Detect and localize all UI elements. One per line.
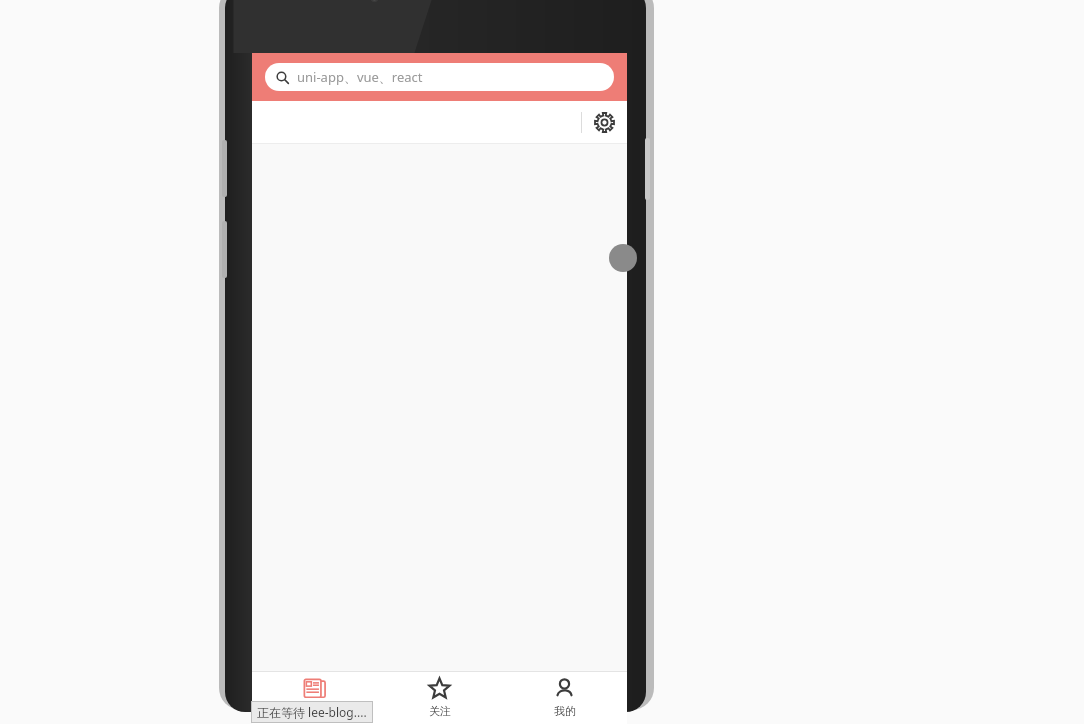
- staticText: uni-app、vue、react: [297, 68, 423, 86]
- staticText: 关注: [429, 704, 451, 718]
- button[interactable]: uni-app、vue、react: [265, 63, 614, 91]
- staticText: 首页: [304, 704, 326, 718]
- button[interactable]: 关注: [377, 671, 502, 724]
- button[interactable]: 首页: [252, 671, 377, 724]
- staticText: 正在等待 lee-blog....: [257, 704, 367, 720]
- staticText: 我的: [554, 704, 576, 718]
- button[interactable]: Settings: [582, 101, 627, 144]
- button[interactable]: 我的: [502, 671, 627, 724]
